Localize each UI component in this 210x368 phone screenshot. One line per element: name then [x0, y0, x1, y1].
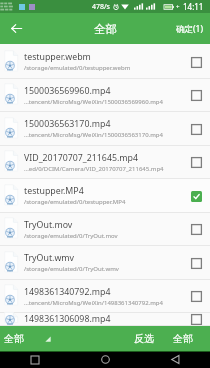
button[interactable]: Select item [187, 187, 205, 205]
button[interactable]: Select item [187, 254, 205, 272]
staticText: 1498361340792.mp4 [24, 286, 111, 298]
button[interactable]: 确定(1) [169, 13, 210, 44]
button[interactable]: Select item [187, 153, 205, 171]
staticText: 1498361306098.mp4 [24, 313, 111, 325]
staticText: TryOut.mov [24, 219, 73, 231]
button[interactable]: Recent apps [0, 351, 70, 368]
button[interactable]: 全部 [0, 326, 57, 351]
button[interactable]: Select item [187, 86, 205, 104]
staticText: 全部 [4, 332, 24, 345]
staticText: /storage/emulated/0/testupper.MP4 [24, 198, 126, 206]
button[interactable]: 1498361306098.mp4 [0, 313, 210, 326]
staticText: 1500036563170.mp4 [24, 118, 111, 130]
staticText: 全部 [94, 22, 117, 36]
staticText: 全部 [173, 332, 193, 345]
button[interactable]: Back [0, 13, 32, 44]
button[interactable]: Select item [187, 287, 205, 305]
button[interactable]: testupper.MP4 [0, 179, 210, 213]
staticText: 1500036569960.mp4 [24, 85, 111, 97]
staticText: /storage/emulated/0/TryOut.mov [24, 232, 118, 240]
staticText: ...tencent/MicroMsg/WeiXin/1500036563170… [24, 131, 163, 139]
button[interactable]: 1498361340792.mp4 [0, 280, 210, 313]
staticText: VID_20170707_211645.mp4 [24, 152, 138, 164]
staticText: 14:11 [183, 1, 204, 12]
staticText: ...ed/0/DCIM/Camera/VID_20170707_211645.… [24, 165, 164, 173]
button[interactable]: Select item [187, 313, 205, 325]
button[interactable]: TryOut.wmv [0, 246, 210, 280]
button[interactable]: Select item [187, 120, 205, 138]
staticText: ...tencent/MicroMsg/WeiXin/1498361340792… [24, 299, 163, 307]
button[interactable]: Back [140, 351, 210, 368]
button[interactable]: VID_20170707_211645.mp4 [0, 146, 210, 179]
staticText: 确定(1) [176, 23, 203, 35]
button[interactable]: 反选 [130, 326, 158, 351]
staticText: testupper.MP4 [24, 185, 84, 197]
staticText: /storage/emulated/0/testupper.webm [24, 64, 131, 72]
button[interactable]: 1500036569960.mp4 [0, 79, 210, 112]
button[interactable]: testupper.webm [0, 45, 210, 79]
button[interactable]: 全部 [169, 326, 197, 351]
staticText: TryOut.wmv [24, 252, 75, 264]
staticText: 反选 [134, 332, 154, 345]
button[interactable]: Select item [187, 53, 205, 71]
staticText: ...tencent/MicroMsg/WeiXin/1500036569960… [24, 98, 163, 106]
staticText: 478/s [92, 2, 110, 12]
staticText: + [176, 3, 180, 11]
button[interactable]: TryOut.mov [0, 213, 210, 246]
button[interactable]: Home [70, 351, 140, 368]
button[interactable]: Select item [187, 220, 205, 238]
button[interactable]: 1500036563170.mp4 [0, 112, 210, 146]
staticText: testupper.webm [24, 51, 91, 63]
staticText: /storage/emulated/0/TryOut.wmv [24, 265, 119, 273]
